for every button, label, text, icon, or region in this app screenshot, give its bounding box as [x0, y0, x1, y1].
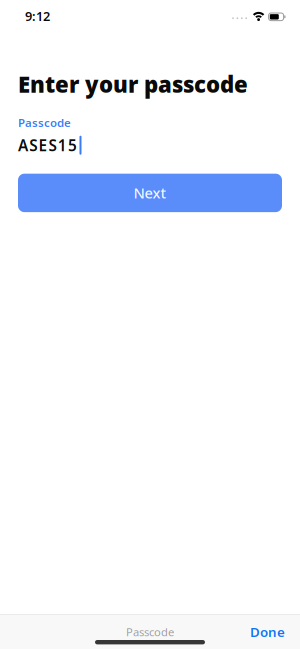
staticText: 1 — [58, 135, 67, 156]
staticText: A — [18, 135, 28, 156]
staticText: Passcode — [126, 624, 174, 639]
staticText: Passcode — [18, 115, 71, 130]
staticText: S — [29, 135, 37, 156]
staticText: 5 — [68, 135, 77, 156]
staticText: Done — [250, 623, 285, 641]
staticText: Next — [133, 183, 166, 203]
button[interactable]: Next — [18, 174, 282, 212]
button[interactable]: Passcode — [0, 624, 300, 639]
staticText: 9:12 — [25, 7, 50, 25]
button[interactable]: Done — [250, 623, 300, 641]
button[interactable]: A — [18, 135, 81, 156]
staticText: S — [49, 135, 57, 156]
staticText: E — [38, 135, 47, 156]
staticText: Enter your passcode — [18, 69, 248, 99]
